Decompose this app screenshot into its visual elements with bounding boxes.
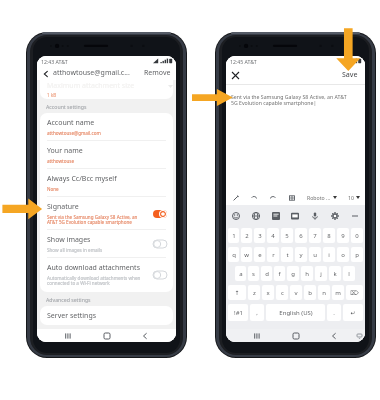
- button[interactable]: u: [309, 247, 321, 262]
- button[interactable]: Format option: [287, 193, 296, 202]
- button[interactable]: e: [254, 247, 265, 262]
- button[interactable]: r: [267, 247, 279, 262]
- button[interactable]: Turn on: [153, 271, 167, 279]
- staticText: 6: [299, 232, 303, 240]
- button[interactable]: x: [262, 285, 274, 300]
- button[interactable]: 9: [337, 228, 349, 243]
- button[interactable]: .: [327, 304, 341, 321]
- button[interactable]: Keyboard option: [231, 211, 241, 221]
- button[interactable]: Save: [342, 70, 358, 80]
- button[interactable]: g: [287, 266, 299, 281]
- button[interactable]: 4: [267, 228, 279, 243]
- button[interactable]: Remove: [143, 68, 172, 78]
- staticText: c: [281, 289, 284, 297]
- button[interactable]: k: [329, 266, 341, 281]
- button[interactable]: Format option: [249, 193, 258, 202]
- button[interactable]: a: [235, 266, 246, 281]
- button[interactable]: 3: [254, 228, 265, 243]
- button[interactable]: m: [332, 285, 344, 300]
- button[interactable]: ↵: [343, 304, 363, 321]
- button[interactable]: Hide keyboard: [353, 330, 365, 342]
- staticText: q: [232, 251, 236, 259]
- button[interactable]: Home: [288, 329, 304, 342]
- button[interactable]: 6: [295, 228, 307, 243]
- button[interactable]: English (US): [266, 304, 325, 321]
- button[interactable]: 2: [241, 228, 252, 243]
- button[interactable]: l: [343, 266, 355, 281]
- button[interactable]: Keyboard option: [330, 211, 340, 221]
- button[interactable]: d: [261, 266, 272, 281]
- staticText: Account settings: [46, 103, 87, 110]
- staticText: Advanced settings: [46, 296, 91, 303]
- staticText: Sent via the Samsung Galaxy S8 Active, a…: [47, 214, 138, 226]
- button[interactable]: w: [241, 247, 252, 262]
- button[interactable]: Close: [230, 70, 241, 81]
- button[interactable]: Back: [137, 329, 153, 342]
- button[interactable]: b: [304, 285, 316, 300]
- button[interactable]: h: [301, 266, 313, 281]
- staticText: e: [258, 251, 262, 259]
- button[interactable]: Recents: [60, 329, 76, 342]
- staticText: n: [322, 289, 326, 297]
- staticText: atthowtouse: [47, 158, 75, 164]
- button[interactable]: ↑: [228, 285, 246, 300]
- button[interactable]: n: [318, 285, 330, 300]
- button[interactable]: 1: [228, 228, 239, 243]
- button[interactable]: q: [228, 247, 239, 262]
- button[interactable]: !#1: [228, 304, 248, 321]
- staticText: 2: [245, 232, 249, 240]
- button[interactable]: Turn on: [153, 240, 167, 248]
- button[interactable]: ,: [250, 304, 264, 321]
- staticText: v: [294, 289, 298, 297]
- button[interactable]: Your name: [40, 141, 173, 169]
- button[interactable]: y: [295, 247, 307, 262]
- button[interactable]: Always Cc/Bcc myself: [40, 169, 173, 197]
- button[interactable]: s: [248, 266, 259, 281]
- staticText: a: [239, 270, 243, 278]
- button[interactable]: Account name: [40, 113, 173, 141]
- button[interactable]: o: [337, 247, 349, 262]
- button[interactable]: Turn off: [153, 210, 167, 218]
- staticText: Roboto ...: [307, 194, 331, 201]
- button[interactable]: Keyboard option: [310, 211, 320, 221]
- button[interactable]: v: [290, 285, 302, 300]
- button[interactable]: Recents: [249, 329, 265, 342]
- button[interactable]: Keyboard option: [251, 211, 261, 221]
- staticText: 7: [313, 232, 317, 240]
- button[interactable]: z: [248, 285, 260, 300]
- button[interactable]: Keyboard option: [271, 211, 281, 221]
- staticText: y: [299, 251, 303, 259]
- button[interactable]: 5: [281, 228, 293, 243]
- staticText: g: [291, 270, 295, 278]
- button[interactable]: Format option: [268, 193, 277, 202]
- button[interactable]: Home: [99, 329, 115, 342]
- button[interactable]: 0: [351, 228, 363, 243]
- staticText: 1: [232, 232, 236, 240]
- button[interactable]: Signature: [40, 197, 173, 230]
- button[interactable]: Show images: [40, 230, 173, 258]
- button[interactable]: 7: [309, 228, 321, 243]
- button[interactable]: j: [315, 266, 327, 281]
- button[interactable]: i: [323, 247, 335, 262]
- button[interactable]: Keyboard option: [350, 211, 360, 221]
- button[interactable]: Keyboard option: [290, 211, 300, 221]
- staticText: w: [244, 251, 249, 259]
- button[interactable]: 8: [323, 228, 335, 243]
- staticText: 12:43 AT&T: [41, 58, 68, 65]
- staticText: t: [286, 251, 289, 259]
- button[interactable]: ⌦: [346, 285, 363, 300]
- button[interactable]: p: [351, 247, 363, 262]
- staticText: 12:45 AT&T: [230, 58, 257, 65]
- button[interactable]: Auto download attachments: [40, 258, 173, 292]
- button[interactable]: Format option: [231, 193, 240, 202]
- button[interactable]: Server settings: [40, 306, 173, 325]
- button[interactable]: Back: [326, 329, 342, 342]
- staticText: Account name: [47, 118, 95, 128]
- button[interactable]: t: [281, 247, 293, 262]
- button[interactable]: c: [276, 285, 288, 300]
- button[interactable]: f: [274, 266, 285, 281]
- button[interactable]: Back: [41, 69, 50, 78]
- staticText: Show images: [47, 235, 91, 245]
- staticText: ↑: [234, 289, 240, 296]
- button[interactable]: Maximum attachment size: [40, 80, 173, 99]
